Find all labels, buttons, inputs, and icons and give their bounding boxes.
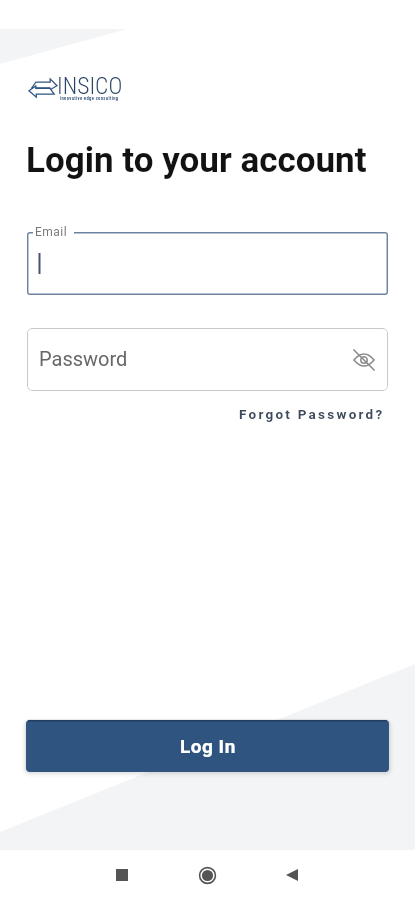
button[interactable]: Recents <box>104 857 140 893</box>
button[interactable]: Back <box>274 857 310 893</box>
button[interactable]: Home <box>189 857 225 893</box>
button[interactable]: Show password <box>352 348 376 372</box>
staticText: INSICO <box>57 72 123 100</box>
button[interactable]: Password <box>27 328 388 391</box>
staticText: innovative edge consulting <box>60 96 119 101</box>
staticText: Login to your account <box>26 140 367 181</box>
button[interactable]: Log In <box>26 720 389 772</box>
button[interactable]: Email <box>27 232 388 295</box>
staticText: Email <box>35 225 68 239</box>
staticText: Password <box>39 347 128 370</box>
button[interactable]: Forgot Password? <box>239 406 415 422</box>
staticText: Log In <box>180 735 236 757</box>
